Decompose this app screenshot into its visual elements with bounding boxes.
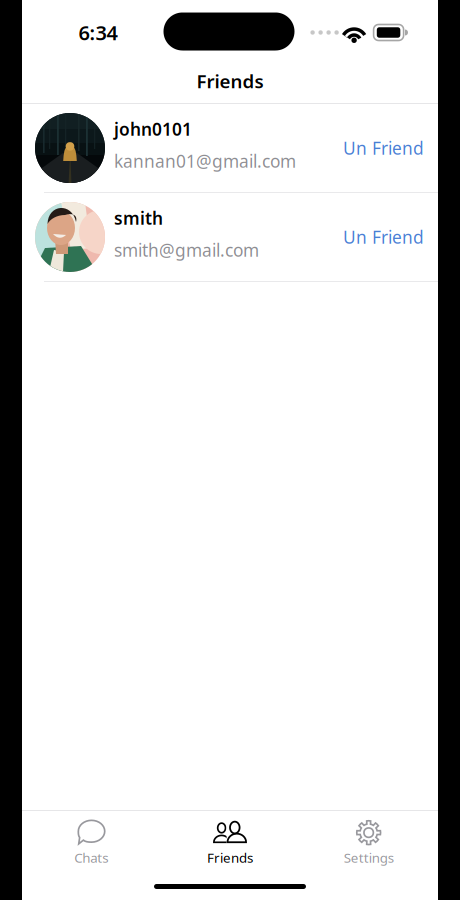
staticText: Friends (207, 849, 253, 866)
button[interactable]: Settings (299, 810, 438, 874)
staticText: Settings (344, 849, 394, 866)
button[interactable]: Chats (22, 810, 161, 874)
staticText: smith@gmail.com (114, 238, 259, 261)
staticText: smith (114, 206, 163, 229)
button[interactable]: Friends (161, 810, 299, 874)
staticText: Un Friend (343, 225, 424, 248)
button[interactable]: Un Friend (337, 124, 428, 171)
staticText: Un Friend (343, 136, 424, 159)
staticText: 6:34 (78, 19, 117, 46)
staticText: kannan01@gmail.com (114, 149, 296, 172)
button[interactable]: Un Friend (337, 213, 428, 260)
staticText: Friends (196, 69, 263, 93)
staticText: Chats (74, 849, 108, 866)
staticText: john0101 (114, 117, 192, 140)
